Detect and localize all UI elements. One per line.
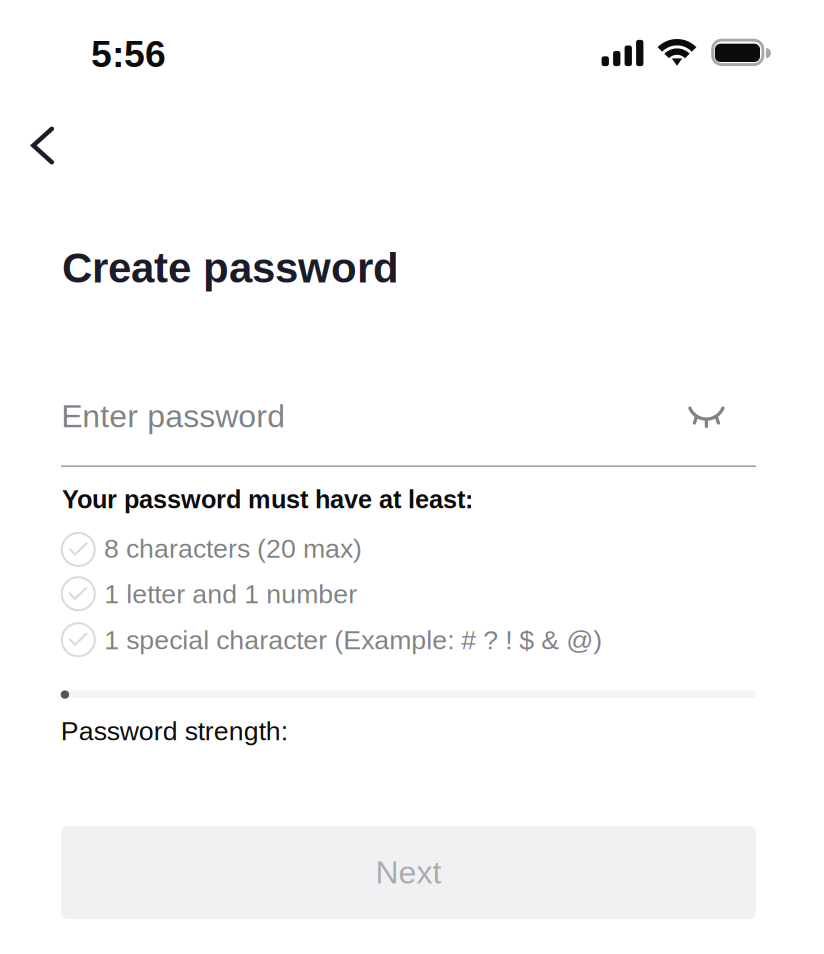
staticText: Your password must have at least:	[62, 485, 473, 514]
staticText: 1 letter and 1 number	[104, 579, 357, 609]
staticText: Create password	[62, 244, 399, 291]
staticText: Password strength:	[61, 716, 288, 746]
button[interactable]: Next	[61, 826, 756, 919]
staticText: 8 characters (20 max)	[104, 533, 362, 563]
staticText: 1 special character (Example: # ? ! $ & …	[104, 625, 602, 655]
staticText: Enter password	[61, 398, 285, 434]
button[interactable]: Show password	[666, 388, 744, 446]
staticText: Next	[375, 855, 441, 890]
staticText: 5:56	[91, 33, 166, 75]
button[interactable]: Back	[9, 111, 75, 181]
